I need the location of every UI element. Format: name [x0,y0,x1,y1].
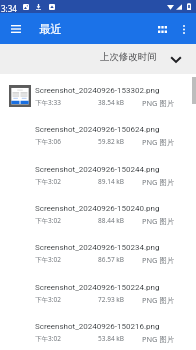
staticText: 3:34 [1,3,17,14]
staticText: 38.54 kB [98,98,125,107]
staticText: Screenshot_20240926-150234.png [35,243,185,252]
staticText: 72.93 kB [98,295,125,304]
staticText: 最近 [39,22,62,36]
staticText: PNG 图片 [142,334,175,344]
staticText: Screenshot_20240926-150240.png [35,204,185,213]
button[interactable]: 上次修改时间 [95,46,188,72]
button[interactable]: Screenshot_20240926-150216.png [0,310,196,349]
staticText: 上次修改时间 [100,51,157,63]
staticText: 86.57 kB [98,255,125,264]
staticText: Screenshot_20240926-150244.png [35,165,185,174]
staticText: 88.44 kB [98,216,125,225]
staticText: PNG 图片 [142,177,175,187]
staticText: PNG 图片 [142,255,175,265]
staticText: 59.82 kB [98,137,125,146]
staticText: 53.84 kB [98,334,125,343]
staticText: 下午3:06 [35,137,61,146]
button[interactable]: Screenshot_20240926-150224.png [0,271,196,310]
button[interactable]: Screenshot_20240926-150240.png [0,192,196,231]
staticText: Screenshot_20240926-150624.png [35,125,185,134]
button[interactable]: Screenshot_20240926-150624.png [0,113,196,152]
staticText: 下午3:02 [35,334,61,343]
button[interactable]: Screenshot_20240926-150244.png [0,153,196,192]
button[interactable]: Open navigation drawer [4,17,28,41]
staticText: Screenshot_20240926-153302.png [35,86,185,95]
staticText: 下午3:33 [35,98,61,107]
staticText: Screenshot_20240926-150224.png [35,283,185,292]
button[interactable]: Screenshot_20240926-153302.png [0,74,196,113]
staticText: PNG 图片 [142,137,175,147]
staticText: Screenshot_20240926-150216.png [35,322,185,331]
staticText: 89.14 kB [98,177,125,186]
staticText: PNG 图片 [142,295,175,305]
staticText: PNG 图片 [142,216,175,226]
staticText: PNG 图片 [142,98,175,108]
staticText: 下午3:02 [35,295,61,304]
staticText: 下午3:02 [35,216,61,225]
staticText: 下午3:02 [35,255,61,264]
staticText: 下午3:02 [35,177,61,186]
button[interactable]: Grid view [150,17,174,41]
button[interactable]: Screenshot_20240926-150234.png [0,231,196,270]
button[interactable]: More options [172,17,196,41]
